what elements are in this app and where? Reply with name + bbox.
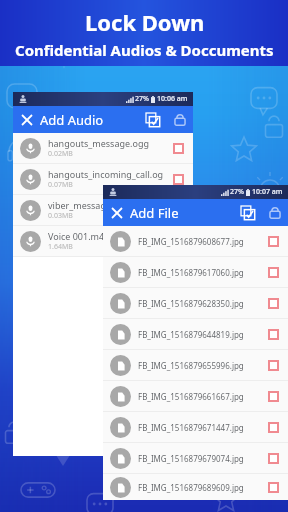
button[interactable]: FB_IMG_1516879661667.jpg [103, 381, 288, 411]
button[interactable]: Select Voice 001.m4a [166, 229, 190, 253]
button[interactable]: viber_message.ogg [13, 195, 193, 225]
button[interactable]: FB_IMG_1516879655996.jpg [103, 350, 288, 380]
button[interactable]: FB_IMG_1516879679074.jpg [103, 443, 288, 473]
button[interactable]: hangouts_message.ogg [13, 133, 193, 163]
button[interactable]: Select FB_IMG_1516879661667.jpg [261, 384, 285, 408]
staticText: Confidential Audios & Doccuments [15, 40, 274, 60]
staticText: 0.02MB [48, 149, 73, 159]
button[interactable]: Select viber_message.ogg [166, 198, 190, 222]
staticText: Voice 001.m4a [48, 230, 110, 242]
button[interactable]: Select FB_IMG_1516879644819.jpg [261, 322, 285, 346]
staticText: FB_IMG_1516879628350.jpg [138, 298, 261, 309]
button[interactable]: Voice 001.m4a [13, 226, 193, 256]
staticText: Add File [130, 204, 179, 222]
button[interactable]: Select hangouts_message.ogg [166, 136, 190, 160]
button[interactable]: Select FB_IMG_1516879671447.jpg [261, 415, 285, 439]
staticText: FB_IMG_1516879671447.jpg [138, 422, 261, 433]
staticText: viber_message.ogg [48, 199, 130, 211]
button[interactable]: FB_IMG_1516879628350.jpg [103, 288, 288, 318]
staticText: FB_IMG_1516879661667.jpg [138, 391, 261, 402]
button[interactable]: Lock [261, 199, 288, 226]
button[interactable]: Select FB_IMG_1516879608677.jpg [261, 229, 285, 253]
button[interactable]: FB_IMG_1516879689609.jpg [103, 474, 288, 500]
staticText: FB_IMG_1516879679074.jpg [138, 453, 261, 464]
button[interactable]: FB_IMG_1516879608677.jpg [103, 226, 288, 256]
button[interactable]: Select FB_IMG_1516879679074.jpg [261, 446, 285, 470]
staticText: 0.07MB [48, 180, 73, 190]
staticText: 10:06 am [157, 94, 188, 104]
staticText: FB_IMG_1516879644819.jpg [138, 329, 261, 340]
staticText: FB_IMG_1516879608677.jpg [138, 236, 261, 247]
staticText: hangouts_incoming_call.ogg [48, 168, 166, 180]
staticText: FB_IMG_1516879655996.jpg [138, 360, 261, 371]
button[interactable]: Close [103, 199, 130, 226]
button[interactable]: Select FB_IMG_1516879655996.jpg [261, 353, 285, 377]
staticText: 0.03MB [48, 211, 73, 221]
staticText: Lock Down [85, 7, 205, 37]
button[interactable]: Close [13, 106, 40, 133]
staticText: 27% [135, 94, 149, 104]
button[interactable]: Select FB_IMG_1516879689609.jpg [261, 475, 285, 499]
staticText: Add Audio [40, 111, 104, 129]
button[interactable]: Select FB_IMG_1516879617060.jpg [261, 260, 285, 284]
staticText: 10:07 am [252, 187, 283, 197]
button[interactable]: hangouts_incoming_call.ogg [13, 164, 193, 194]
staticText: 27% [230, 187, 244, 197]
staticText: FB_IMG_1516879689609.jpg [138, 482, 261, 493]
button[interactable]: FB_IMG_1516879644819.jpg [103, 319, 288, 349]
staticText: 1.64MB [48, 242, 73, 252]
button[interactable]: Select all [139, 106, 166, 133]
staticText: hangouts_message.ogg [48, 137, 149, 149]
button[interactable]: Select FB_IMG_1516879628350.jpg [261, 291, 285, 315]
button[interactable]: FB_IMG_1516879617060.jpg [103, 257, 288, 287]
button[interactable]: FB_IMG_1516879671447.jpg [103, 412, 288, 442]
button[interactable]: Lock [166, 106, 193, 133]
button[interactable]: Select hangouts_incoming_call.ogg [166, 167, 190, 191]
button[interactable]: Select all [234, 199, 261, 226]
staticText: FB_IMG_1516879617060.jpg [138, 267, 261, 278]
